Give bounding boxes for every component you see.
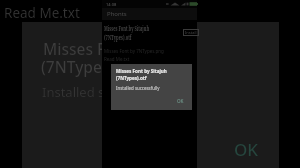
staticText: OK xyxy=(234,138,259,161)
staticText: (7NTypes).otf xyxy=(116,75,147,81)
staticText: (7NTypes xyxy=(41,56,110,77)
staticText: OK xyxy=(177,98,184,104)
staticText: (7NTypes).otf xyxy=(104,33,132,42)
staticText: Installed s xyxy=(42,83,105,101)
staticText: Read Me.txt xyxy=(104,56,130,62)
staticText: Misses Font by Sitajuh xyxy=(116,68,167,74)
button[interactable]: Misses Font by Sitajuh xyxy=(111,64,192,110)
staticText: Misses Font by 7NTypes.png xyxy=(104,48,164,54)
button[interactable]: Install xyxy=(185,30,197,35)
staticText: 14:08 xyxy=(106,2,117,7)
staticText: Install xyxy=(185,30,197,35)
button[interactable]: Misses F xyxy=(22,22,279,168)
staticText: Read Me.txt xyxy=(4,4,80,22)
staticText: Phonts xyxy=(107,10,127,18)
staticText: Misses Font by Sitajuh xyxy=(104,24,149,33)
staticText: Misses F xyxy=(43,38,106,59)
button[interactable]: OK xyxy=(234,138,259,161)
other: Status icons xyxy=(151,1,195,7)
staticText: Installed successfully xyxy=(116,85,160,91)
button[interactable]: OK xyxy=(177,98,184,104)
